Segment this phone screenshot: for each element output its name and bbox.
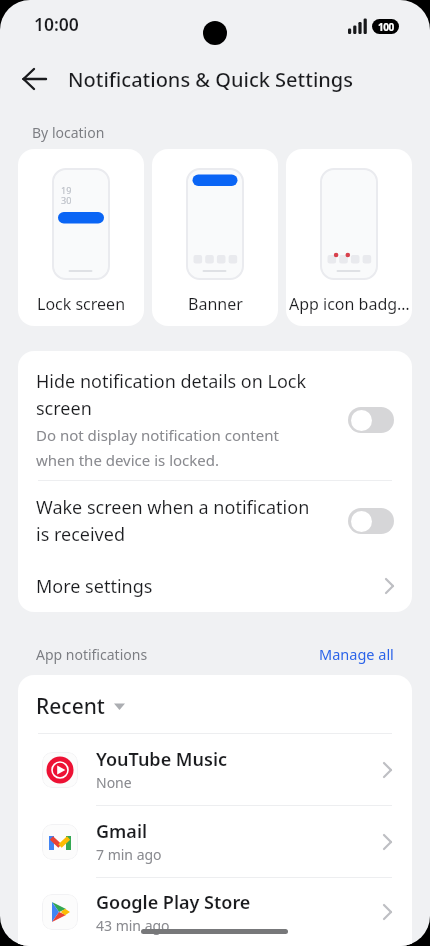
button[interactable]: Gmail [18,806,412,877]
staticText: 10:00 [34,12,79,36]
button[interactable] [13,58,55,100]
button[interactable]: App icon badg… [286,149,412,326]
button[interactable]: Manage all [319,644,394,664]
staticText: Banner [188,293,243,315]
button[interactable]: YouTube Music [18,734,412,805]
button[interactable] [348,407,394,433]
staticText: By location [32,123,105,142]
button[interactable]: Hide notification details on Lock screen [36,369,394,470]
button[interactable]: 19 30 [18,149,144,326]
button[interactable] [348,508,394,534]
staticText: 19 30 [61,184,72,207]
staticText: YouTube Music [96,747,228,772]
staticText: 100 [378,20,394,34]
button[interactable]: Recent [36,692,125,721]
staticText: More settings [36,574,153,599]
staticText: Lock screen [37,293,126,315]
staticText: App notifications [36,645,148,664]
staticText: Hide notification details on Lock screen [36,369,307,420]
staticText: 43 min ago [96,916,170,935]
staticText: Wake screen when a notification is recei… [36,495,348,546]
staticText: Google Play Store [96,890,251,915]
staticText: 7 min ago [96,845,162,864]
button[interactable]: Wake screen when a notification is recei… [36,495,394,546]
staticText: Gmail [96,819,148,844]
button[interactable]: Google Play Store [18,878,412,946]
button[interactable]: More settings [36,571,394,601]
staticText: Recent [36,692,105,721]
staticText: App icon badg… [289,293,410,315]
staticText: Notifications & Quick Settings [68,66,353,93]
button[interactable]: Banner [152,149,278,326]
staticText: Do not display notification content when… [36,425,279,470]
staticText: None [96,773,132,792]
